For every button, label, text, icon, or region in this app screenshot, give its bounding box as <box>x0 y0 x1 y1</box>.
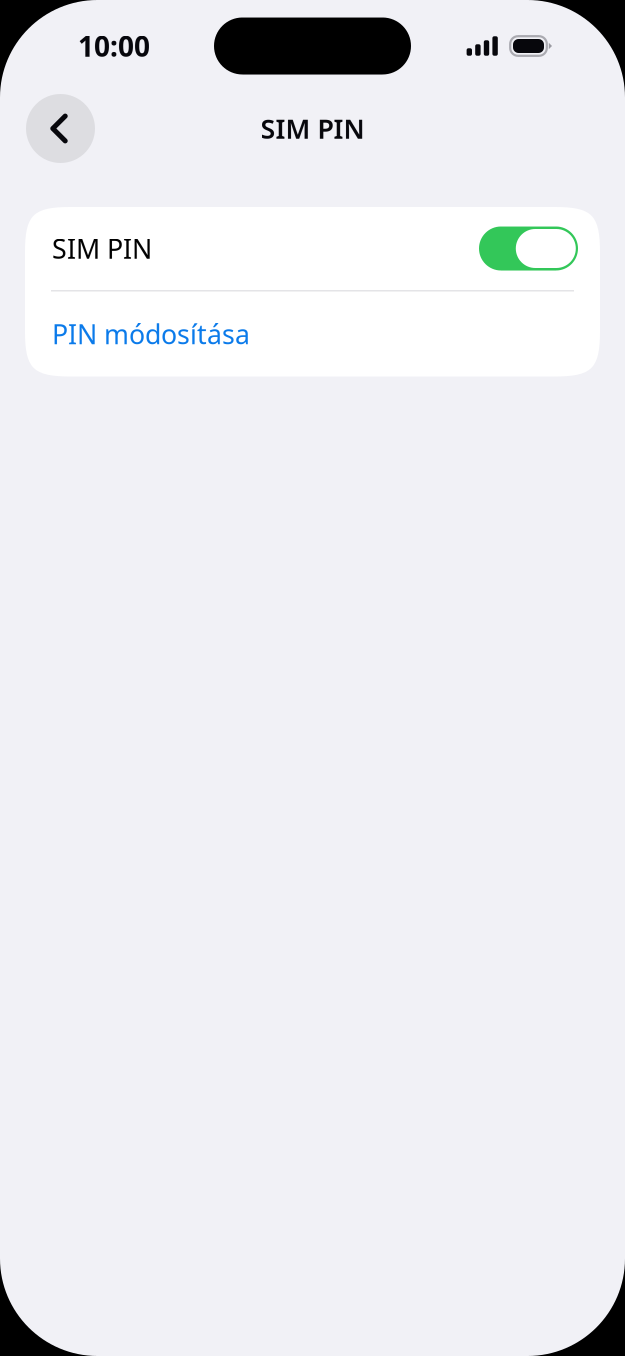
staticText: SIM PIN <box>52 231 152 266</box>
button[interactable]: PIN módosítása <box>25 291 600 376</box>
staticText: 10:00 <box>78 27 150 65</box>
button[interactable]: SIM PIN <box>25 207 600 290</box>
button[interactable]: Back <box>26 94 95 163</box>
staticText: PIN módosítása <box>52 316 250 352</box>
staticText: SIM PIN <box>260 111 364 146</box>
